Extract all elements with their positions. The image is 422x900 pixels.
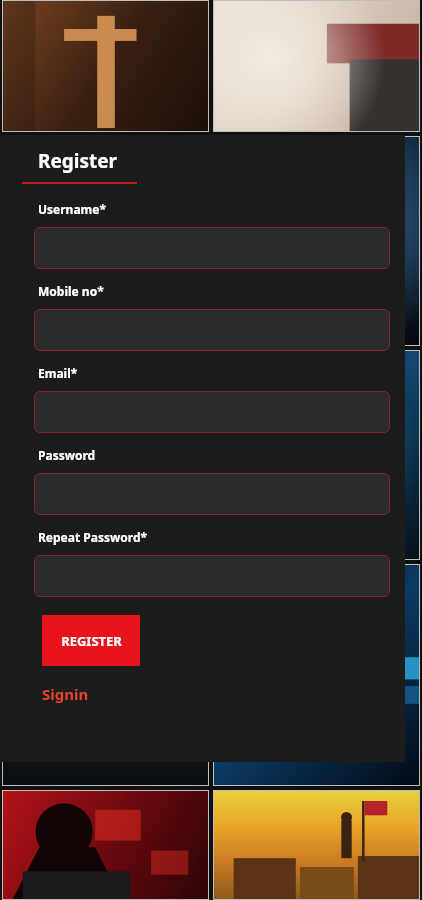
staticText: Signin (42, 684, 89, 704)
staticText: Repeat Password* (38, 529, 147, 545)
button[interactable]: Signin (40, 682, 91, 706)
button[interactable]: Email* (34, 391, 390, 433)
button[interactable]: Repeat Password* (34, 555, 390, 597)
button[interactable]: Mobile no* (34, 309, 390, 351)
staticText: Password (38, 447, 96, 463)
staticText: Mobile no* (38, 283, 104, 299)
button[interactable]: Username* (34, 227, 390, 269)
staticText: Username* (38, 201, 106, 217)
button[interactable]: Password (34, 473, 390, 515)
staticText: Register (38, 148, 118, 174)
button[interactable]: REGISTER (42, 615, 140, 666)
staticText: Email* (38, 365, 78, 381)
staticText: REGISTER (61, 632, 122, 650)
